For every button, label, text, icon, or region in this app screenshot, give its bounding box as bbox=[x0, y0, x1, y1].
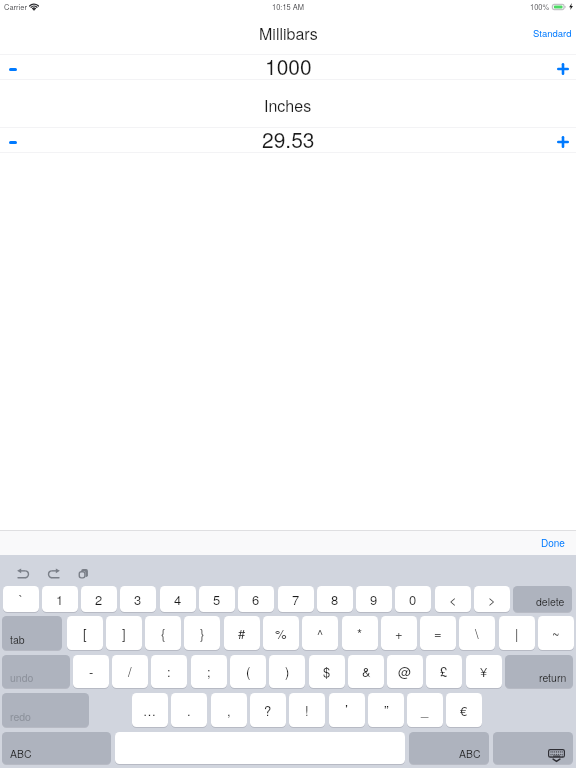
staticText: 1 bbox=[56, 590, 64, 609]
button[interactable]: Done bbox=[541, 536, 576, 550]
button[interactable]: … bbox=[132, 693, 168, 727]
button[interactable]: 5 bbox=[199, 586, 235, 612]
button[interactable]: / bbox=[112, 655, 148, 688]
staticText: … bbox=[143, 701, 157, 720]
button[interactable]: 2 bbox=[81, 586, 117, 612]
button[interactable]: delete bbox=[513, 586, 572, 612]
button[interactable]: ` bbox=[3, 586, 39, 612]
staticText: { bbox=[161, 624, 166, 643]
button[interactable]: 8 bbox=[317, 586, 353, 612]
button[interactable]: Undo bbox=[11, 561, 35, 585]
button[interactable]: ABC bbox=[2, 732, 111, 764]
staticText: : bbox=[167, 662, 171, 681]
button[interactable]: . bbox=[171, 693, 207, 727]
button[interactable]: ( bbox=[230, 655, 266, 688]
button[interactable]: ABC bbox=[409, 732, 489, 764]
button[interactable]: redo bbox=[2, 693, 89, 727]
staticText: > bbox=[488, 590, 496, 609]
staticText: ABC bbox=[10, 746, 32, 761]
button[interactable]: ! bbox=[289, 693, 325, 727]
staticText: 3 bbox=[134, 590, 142, 609]
staticText: $ bbox=[323, 662, 331, 681]
button[interactable]: undo bbox=[2, 655, 70, 688]
button[interactable]: £ bbox=[426, 655, 462, 688]
staticText: ~ bbox=[552, 624, 560, 643]
staticText: Millibars bbox=[259, 22, 318, 41]
button[interactable]: & bbox=[348, 655, 384, 688]
button[interactable]: Increase Millibars bbox=[549, 55, 576, 79]
staticText: redo bbox=[10, 709, 31, 724]
button[interactable]: ] bbox=[106, 616, 142, 650]
staticText: @ bbox=[398, 662, 412, 681]
staticText: £ bbox=[440, 662, 448, 681]
button[interactable]: 7 bbox=[278, 586, 314, 612]
button[interactable]: Hide keyboard bbox=[493, 732, 573, 764]
button[interactable]: 9 bbox=[356, 586, 392, 612]
staticText: 29.53 bbox=[262, 124, 315, 148]
button[interactable]: 1 bbox=[42, 586, 78, 612]
button[interactable]: - bbox=[73, 655, 109, 688]
button[interactable]: ) bbox=[269, 655, 305, 688]
staticText: ’ bbox=[345, 700, 349, 720]
button[interactable]: = bbox=[420, 616, 456, 650]
button[interactable]: * bbox=[342, 616, 378, 650]
staticText: delete bbox=[536, 594, 565, 609]
staticText: + bbox=[395, 624, 403, 643]
button[interactable]: _ bbox=[407, 693, 443, 727]
button[interactable]: ^ bbox=[302, 616, 338, 650]
button[interactable]: Decrease Inches bbox=[0, 128, 26, 152]
staticText: ABC bbox=[459, 746, 481, 761]
button[interactable]: < bbox=[435, 586, 471, 612]
button[interactable]: $ bbox=[309, 655, 345, 688]
staticText: ` bbox=[19, 590, 24, 609]
staticText: [ bbox=[83, 624, 87, 643]
button[interactable]: 4 bbox=[160, 586, 196, 612]
button[interactable]: Redo bbox=[41, 561, 65, 585]
staticText: ¥ bbox=[480, 662, 488, 681]
button[interactable]: ’ bbox=[329, 693, 365, 727]
staticText: 7 bbox=[292, 590, 300, 609]
button[interactable]: + bbox=[381, 616, 417, 650]
button[interactable]: % bbox=[263, 616, 299, 650]
button[interactable]: Increase Inches bbox=[549, 128, 576, 152]
staticText: 10:15 AM bbox=[272, 1, 305, 12]
staticText: ? bbox=[264, 701, 272, 720]
staticText: . bbox=[187, 701, 191, 720]
button[interactable]: ? bbox=[250, 693, 286, 727]
button[interactable]: 6 bbox=[238, 586, 274, 612]
button[interactable]: } bbox=[184, 616, 220, 650]
staticText: 5 bbox=[213, 590, 221, 609]
button[interactable]: 3 bbox=[120, 586, 156, 612]
staticText: undo bbox=[10, 670, 34, 685]
staticText: - bbox=[89, 662, 94, 681]
button[interactable]: 0 bbox=[395, 586, 431, 612]
staticText: tab bbox=[10, 632, 25, 647]
staticText: Carrier bbox=[4, 1, 27, 12]
button[interactable]: return bbox=[505, 655, 573, 688]
button[interactable]: ” bbox=[368, 693, 404, 727]
staticText: # bbox=[238, 624, 246, 643]
button[interactable]: Standard bbox=[533, 25, 576, 39]
button[interactable]: # bbox=[224, 616, 260, 650]
button[interactable]: ; bbox=[191, 655, 227, 688]
button[interactable]: [ bbox=[67, 616, 103, 650]
button[interactable]: > bbox=[474, 586, 510, 612]
staticText: ! bbox=[305, 701, 309, 720]
button[interactable]: tab bbox=[2, 616, 62, 650]
button[interactable]: Decrease Millibars bbox=[0, 55, 26, 79]
button[interactable]: € bbox=[446, 693, 482, 727]
button[interactable]: Paste bbox=[71, 561, 95, 585]
button[interactable]: : bbox=[151, 655, 187, 688]
button[interactable]: | bbox=[499, 616, 535, 650]
staticText: , bbox=[227, 701, 231, 720]
staticText: | bbox=[515, 624, 519, 643]
staticText: 2 bbox=[95, 590, 103, 609]
button[interactable]: , bbox=[211, 693, 247, 727]
button[interactable]: ¥ bbox=[466, 655, 502, 688]
button[interactable]: ~ bbox=[538, 616, 574, 650]
staticText: ( bbox=[246, 662, 251, 681]
button[interactable]: @ bbox=[387, 655, 423, 688]
button[interactable]: { bbox=[145, 616, 181, 650]
button[interactable]: \ bbox=[459, 616, 495, 650]
